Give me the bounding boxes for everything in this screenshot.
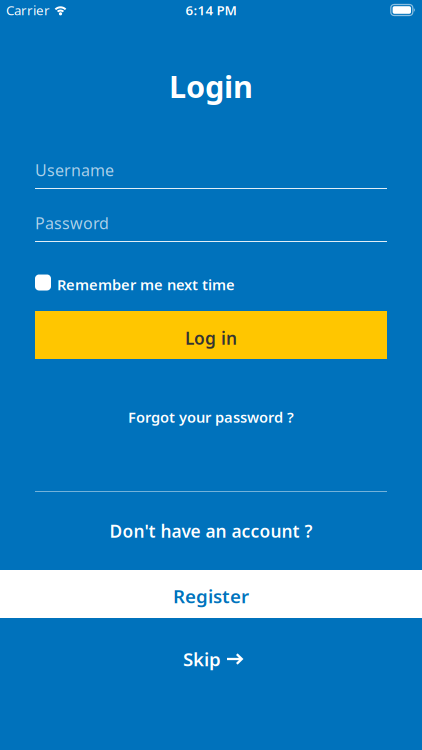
button[interactable]: Skip bbox=[181, 646, 241, 668]
button[interactable]: Log in bbox=[35, 311, 387, 359]
staticText: Log in bbox=[185, 326, 237, 349]
staticText: Carrier bbox=[6, 1, 50, 19]
staticText: Register bbox=[173, 584, 249, 608]
staticText: Password bbox=[35, 212, 109, 234]
staticText: Skip bbox=[183, 647, 221, 671]
button[interactable]: Register bbox=[0, 570, 422, 618]
staticText: Don't have an account ? bbox=[109, 519, 312, 542]
button[interactable]: Remember me next time bbox=[0, 274, 422, 291]
staticText: 6:14 PM bbox=[185, 1, 236, 19]
staticText: Forgot your password ? bbox=[128, 407, 294, 427]
button[interactable]: Forgot your password ? bbox=[128, 405, 294, 425]
staticText: Remember me next time bbox=[57, 275, 235, 294]
staticText: Username bbox=[35, 159, 114, 181]
staticText: Login bbox=[169, 66, 253, 106]
